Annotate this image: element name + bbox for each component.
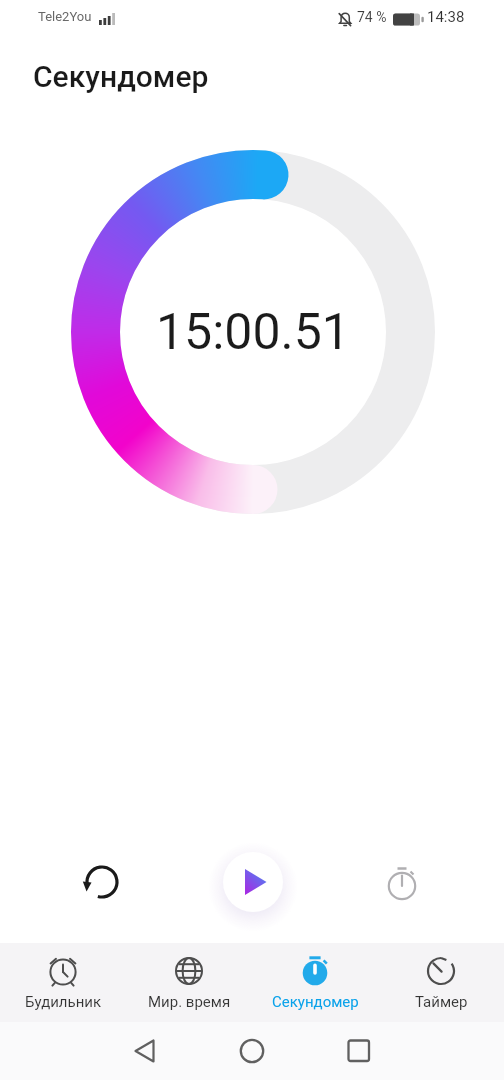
button[interactable] [223,852,283,912]
staticText: 15:00.51 [156,303,350,362]
staticText: Будильник [25,993,102,1011]
button[interactable] [168,1022,336,1080]
button[interactable] [336,1022,504,1080]
staticText: Таймер [415,993,468,1011]
staticText: Секундомер [33,59,209,94]
staticText: 14:38 [427,8,465,26]
button[interactable]: Будильник [0,943,126,1022]
staticText: 74 % [357,9,387,25]
button[interactable] [72,852,132,912]
button[interactable]: Мир. время [126,943,252,1022]
button[interactable]: Таймер [378,943,504,1022]
staticText: Мир. время [148,993,231,1011]
staticText: Секундомер [272,993,359,1011]
button[interactable]: Секундомер [252,943,378,1022]
button[interactable] [372,854,432,914]
staticText: Tele2You [38,9,92,24]
button[interactable] [0,1022,168,1080]
